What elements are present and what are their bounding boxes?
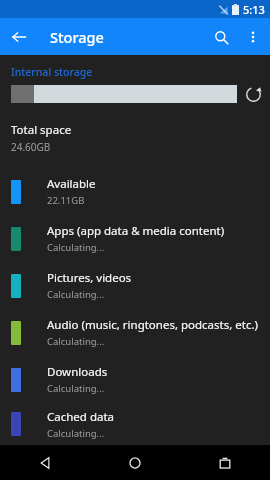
button[interactable]: Cached data [0, 403, 270, 445]
staticText: 22.11GB [47, 194, 85, 207]
staticText: Calculating... [47, 241, 105, 254]
staticText: Calculating... [47, 335, 105, 348]
staticText: Internal storage [11, 65, 93, 79]
button[interactable]: Pictures, videos [0, 262, 270, 309]
staticText: Apps (app data & media content) [47, 223, 225, 239]
staticText: Calculating... [47, 427, 105, 440]
button[interactable]: More options [238, 22, 268, 52]
button[interactable]: Back [0, 445, 90, 480]
staticText: Calculating... [47, 382, 105, 395]
staticText: Total space [11, 122, 72, 138]
staticText: 5:13 [243, 2, 265, 17]
staticText: Cached data [47, 409, 115, 425]
staticText: Audio (music, ringtones, podcasts, etc.) [47, 317, 258, 333]
button[interactable]: Refresh [237, 79, 270, 109]
button[interactable]: Apps (app data & media content) [0, 215, 270, 262]
button[interactable]: Back [0, 18, 37, 55]
staticText: Pictures, videos [47, 270, 132, 286]
button[interactable]: Available [0, 168, 270, 215]
staticText: Storage [50, 27, 104, 47]
button[interactable]: Search [204, 20, 238, 54]
staticText: 24.60GB [11, 140, 51, 154]
staticText: Downloads [47, 364, 108, 380]
button[interactable]: Audio (music, ringtones, podcasts, etc.) [0, 309, 270, 356]
button[interactable]: Downloads [0, 356, 270, 403]
staticText: Available [47, 176, 96, 192]
button[interactable]: Recent apps [180, 445, 270, 480]
staticText: Calculating... [47, 288, 105, 301]
button[interactable]: Home [90, 445, 180, 480]
